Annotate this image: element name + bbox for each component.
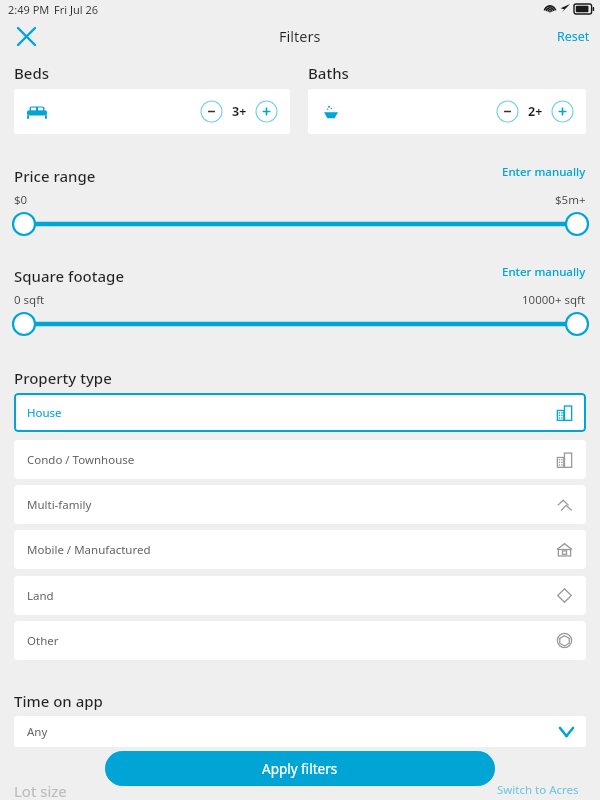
staticText: Baths — [308, 63, 349, 83]
staticText: Property type — [14, 368, 112, 388]
staticText: Fri Jul 26 — [54, 2, 99, 17]
button[interactable]: Enter manually — [502, 264, 586, 280]
button[interactable]: Increase — [255, 100, 278, 123]
button[interactable]: Decrease — [200, 100, 223, 123]
staticText: 10000+ sqft — [522, 292, 586, 308]
button[interactable]: Decrease — [496, 100, 519, 123]
staticText: Other — [27, 633, 59, 649]
staticText: 2+ — [528, 103, 543, 120]
button[interactable]: Increase — [551, 100, 574, 123]
staticText: House — [27, 405, 62, 421]
staticText: $5m+ — [555, 192, 586, 208]
staticText: Lot size — [14, 781, 67, 800]
button[interactable]: House — [14, 393, 586, 432]
button[interactable]: Land — [14, 576, 586, 615]
staticText: Switch to Acres — [497, 782, 579, 798]
staticText: Enter manually — [502, 264, 586, 280]
staticText: 0 sqft — [14, 292, 45, 308]
button[interactable]: Other — [14, 621, 586, 660]
staticText: Any — [27, 724, 48, 740]
staticText: Enter manually — [502, 164, 586, 180]
button[interactable]: Multi-family — [14, 485, 586, 524]
button[interactable]: Apply filters — [105, 751, 495, 786]
button[interactable]: Close — [10, 20, 42, 52]
staticText: Square footage — [14, 266, 125, 286]
staticText: Time on app — [14, 691, 103, 711]
staticText: Price range — [14, 166, 96, 186]
staticText: Condo / Townhouse — [27, 452, 135, 468]
button[interactable]: Reset — [557, 28, 590, 45]
staticText: Land — [27, 588, 54, 604]
staticText: 3+ — [232, 103, 247, 120]
staticText: Apply filters — [262, 760, 338, 778]
staticText: Multi-family — [27, 497, 92, 513]
staticText: Beds — [14, 63, 50, 83]
staticText: $0 — [14, 192, 28, 208]
button[interactable]: Mobile / Manufactured — [14, 530, 586, 569]
staticText: Filters — [279, 26, 321, 46]
staticText: Reset — [557, 28, 590, 45]
staticText: Mobile / Manufactured — [27, 542, 151, 558]
button[interactable]: Any — [14, 716, 586, 747]
button[interactable]: Condo / Townhouse — [14, 440, 586, 479]
staticText: 2:49 PM — [8, 2, 50, 17]
button[interactable]: Enter manually — [502, 164, 586, 180]
